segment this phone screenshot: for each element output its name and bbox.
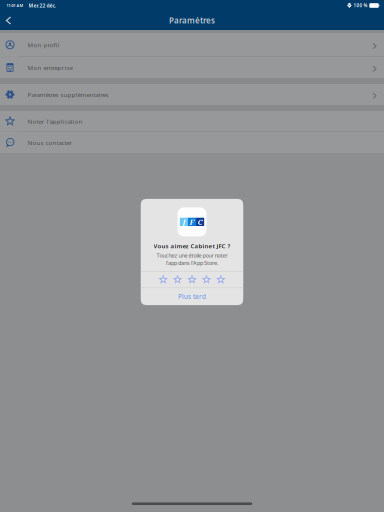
staticText: 11:01 AM: [6, 3, 23, 8]
staticText: Plus tard: [178, 292, 206, 301]
button[interactable]: Retour: [0, 11, 17, 30]
staticText: Mer. 22 déc.: [28, 2, 55, 9]
staticText: l'app dans l'App Store.: [166, 259, 218, 267]
button[interactable]: Noter l'application: [174, 272, 182, 288]
staticText: F: [189, 217, 194, 227]
button[interactable]: Noter l'application: [202, 272, 210, 288]
button[interactable]: Noter l'application: [0, 111, 384, 131]
staticText: Paramètres supplémentaires: [27, 90, 108, 99]
button[interactable]: Noter l'application: [159, 272, 167, 288]
staticText: Touchez une étoile pour noter: [156, 251, 227, 259]
button[interactable]: Mon profil: [0, 33, 384, 56]
button[interactable]: Mon entreprise: [0, 57, 384, 78]
staticText: 100 %: [354, 2, 368, 8]
button[interactable]: Nous contacter: [0, 132, 384, 153]
staticText: Vous aimez Cabinet JFC ?: [153, 242, 230, 250]
button[interactable]: Noter l'application: [188, 272, 196, 288]
staticText: Noter l'application: [27, 117, 82, 125]
button[interactable]: Paramètres supplémentaires: [0, 84, 384, 105]
button[interactable]: Plus tard: [141, 288, 243, 305]
staticText: Nous contacter: [27, 138, 72, 147]
staticText: J: [182, 217, 185, 227]
staticText: C: [198, 217, 203, 227]
staticText: Mon entreprise: [27, 63, 72, 72]
staticText: Mon profil: [27, 41, 59, 49]
button[interactable]: Noter l'application: [217, 272, 225, 288]
staticText: Paramètres: [169, 15, 215, 26]
